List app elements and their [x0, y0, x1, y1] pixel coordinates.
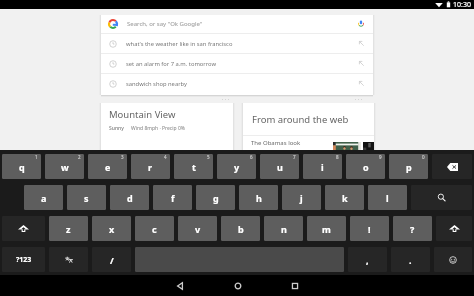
button[interactable]: .: [391, 247, 430, 272]
button[interactable]: Recent apps: [284, 275, 305, 296]
staticText: m: [322, 223, 331, 235]
staticText: 5: [207, 154, 210, 160]
button[interactable]: /: [92, 247, 131, 272]
staticText: l: [386, 192, 389, 204]
staticText: ?123: [16, 255, 32, 265]
staticText: i: [321, 161, 324, 173]
button[interactable]: k: [325, 185, 364, 210]
button[interactable]: Voice search: [357, 20, 365, 28]
staticText: j: [300, 192, 303, 204]
button[interactable]: u: [260, 154, 299, 179]
staticText: 9: [379, 154, 382, 160]
staticText: what's the weather like in san francisco: [126, 40, 233, 48]
button[interactable]: p: [389, 154, 428, 179]
staticText: n: [281, 223, 287, 235]
staticText: w: [61, 161, 69, 173]
staticText: o: [363, 161, 369, 173]
staticText: s: [84, 192, 89, 204]
staticText: a: [41, 192, 47, 204]
button[interactable]: From around the web: [243, 103, 374, 135]
staticText: r: [148, 161, 153, 173]
staticText: b: [238, 223, 244, 235]
staticText: y: [234, 161, 240, 173]
button[interactable]: ?123: [2, 247, 45, 272]
staticText: f: [171, 192, 175, 204]
button[interactable]: Home: [227, 275, 248, 296]
staticText: Mountain View: [109, 108, 176, 121]
button[interactable]: m: [307, 216, 346, 241]
button[interactable]: d: [110, 185, 149, 210]
button[interactable]: emoji: [434, 247, 472, 272]
staticText: Search, or say "Ok Google": [127, 20, 203, 28]
button[interactable]: r: [131, 154, 170, 179]
staticText: ,: [366, 254, 369, 266]
staticText: d: [127, 192, 133, 204]
button[interactable]: Back: [169, 275, 190, 296]
button[interactable]: Search, or say "Ok Google": [101, 15, 373, 33]
staticText: 0: [422, 154, 425, 160]
staticText: 1: [35, 154, 38, 160]
button[interactable]: a: [24, 185, 63, 210]
staticText: z: [66, 223, 71, 235]
button[interactable]: g: [196, 185, 235, 210]
button[interactable]: Insert query: [358, 80, 365, 87]
button[interactable]: h: [239, 185, 278, 210]
staticText: h: [256, 192, 262, 204]
staticText: v: [195, 223, 201, 235]
staticText: !: [368, 223, 371, 235]
staticText: From around the web: [252, 113, 349, 126]
button[interactable]: Insert query: [358, 40, 365, 47]
button[interactable]: ?: [393, 216, 432, 241]
button[interactable]: ,: [348, 247, 387, 272]
button[interactable]: !: [350, 216, 389, 241]
button[interactable]: s: [67, 185, 106, 210]
button[interactable]: shift: [2, 216, 45, 241]
button[interactable]: The Obamas look: [243, 136, 374, 150]
button[interactable]: q: [2, 154, 41, 179]
staticText: 8: [336, 154, 339, 160]
staticText: 7: [293, 154, 296, 160]
staticText: Sunny: [109, 125, 124, 132]
staticText: Wind 8mph · Precip 0%: [131, 125, 185, 132]
staticText: set an alarm for 7 a.m. tomorrow: [126, 60, 216, 68]
staticText: 6: [250, 154, 253, 160]
staticText: u: [277, 161, 283, 173]
button[interactable]: j: [282, 185, 321, 210]
button[interactable]: l: [368, 185, 407, 210]
staticText: The Obamas look: [251, 139, 301, 147]
button[interactable]: set an alarm for 7 a.m. tomorrow: [101, 54, 373, 73]
button[interactable]: f: [153, 185, 192, 210]
staticText: q: [19, 161, 25, 173]
button[interactable]: c: [135, 216, 174, 241]
button[interactable]: sandwich shop nearby: [101, 74, 373, 93]
button[interactable]: i: [303, 154, 342, 179]
staticText: t: [192, 161, 196, 173]
staticText: 2: [78, 154, 81, 160]
button[interactable]: v: [178, 216, 217, 241]
button[interactable]: n: [264, 216, 303, 241]
button[interactable]: shift: [436, 216, 472, 241]
staticText: 4: [164, 154, 167, 160]
button[interactable]: y: [217, 154, 256, 179]
button[interactable]: backspace: [432, 154, 472, 179]
staticText: ?: [410, 223, 415, 235]
button[interactable]: x: [92, 216, 131, 241]
button[interactable]: o: [346, 154, 385, 179]
button[interactable]: z: [49, 216, 88, 241]
button[interactable]: Mountain View: [101, 103, 233, 150]
button[interactable]: Insert query: [358, 60, 365, 67]
button[interactable]: w: [45, 154, 84, 179]
button[interactable]: lang: [49, 247, 88, 272]
staticText: .: [409, 254, 412, 266]
button[interactable]: search: [411, 185, 472, 210]
button[interactable]: More options: [222, 99, 231, 100]
button[interactable]: e: [88, 154, 127, 179]
staticText: g: [213, 192, 219, 204]
staticText: 3: [121, 154, 124, 160]
button[interactable]: t: [174, 154, 213, 179]
staticText: sandwich shop nearby: [126, 80, 187, 88]
button[interactable]: what's the weather like in san francisco: [101, 34, 373, 53]
button[interactable]: b: [221, 216, 260, 241]
button[interactable]: More options: [355, 99, 364, 100]
